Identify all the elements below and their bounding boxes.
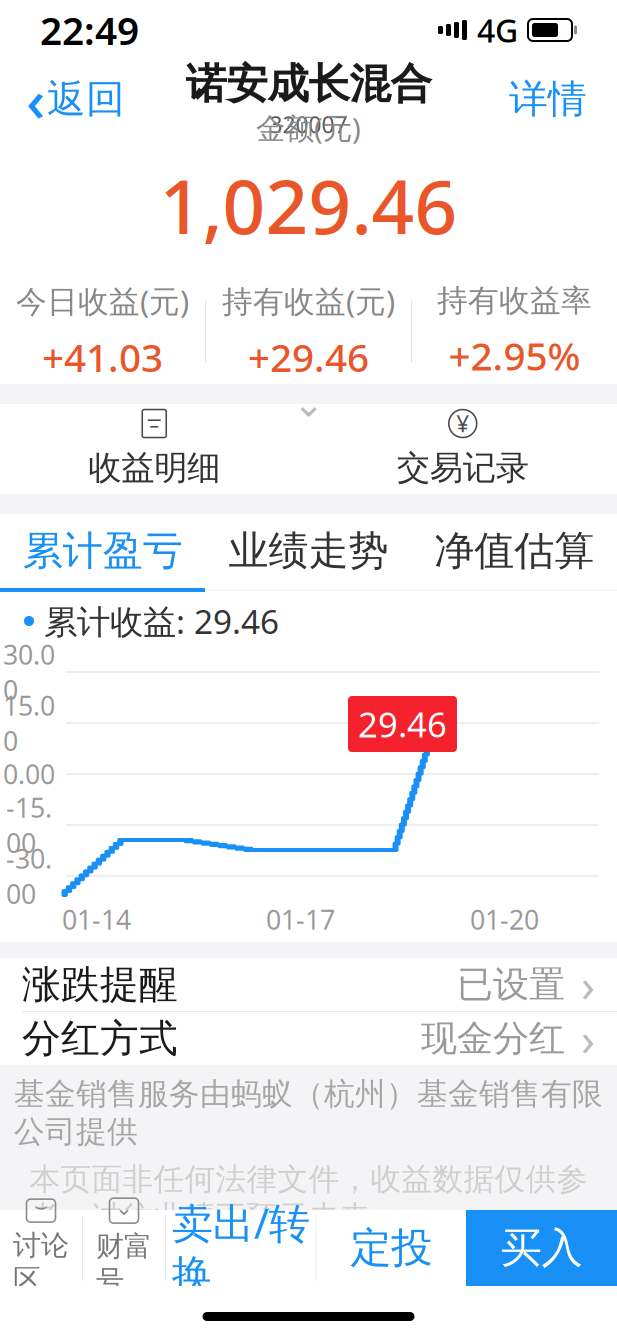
staticText: 01-17 xyxy=(266,902,335,937)
staticText: 累计收益: 29.46 xyxy=(44,599,279,643)
staticText: 交易记录 xyxy=(397,447,529,488)
staticText: 分红方式 xyxy=(22,1015,178,1062)
staticText: 买入 xyxy=(500,1223,582,1273)
button[interactable]: 卖出/转换 xyxy=(166,1210,315,1286)
staticText: 320007 xyxy=(269,109,347,139)
staticText: 0.00 xyxy=(3,756,55,792)
staticText: › xyxy=(581,954,595,1015)
button[interactable]: ‹ xyxy=(6,66,145,132)
staticText: 详情 xyxy=(509,75,587,123)
staticText: 今日收益(元) xyxy=(16,280,189,321)
button[interactable]: 涨跌提醒 xyxy=(0,958,617,1011)
button[interactable]: ⌣ xyxy=(0,1210,82,1286)
button[interactable]: 累计盈亏 xyxy=(0,514,206,588)
staticText: 返回 xyxy=(47,75,125,123)
staticText: 定投 xyxy=(350,1223,432,1273)
staticText: ⌣ xyxy=(34,1196,48,1217)
staticText: 累计盈亏 xyxy=(23,526,183,575)
staticText: 现金分红 xyxy=(421,1016,565,1061)
button[interactable]: 净值估算 xyxy=(411,514,617,588)
button[interactable]: 分红方式 xyxy=(0,1012,617,1065)
staticText: 29.46 xyxy=(358,701,447,747)
button[interactable]: ¥ xyxy=(308,404,617,494)
staticText: 15.00 xyxy=(3,688,55,758)
staticText: 已设置 xyxy=(457,962,565,1007)
staticText: › xyxy=(581,1008,595,1069)
staticText: 持有收益(元) xyxy=(222,280,395,321)
staticText: 收益明细 xyxy=(88,447,220,488)
staticText: ⌄ xyxy=(293,382,324,425)
staticText: 基金销售服务由蚂蚁（杭州）基金销售有限公司提供 xyxy=(14,1075,603,1150)
button[interactable]: 买入 xyxy=(466,1210,617,1286)
staticText: 1,029.46 xyxy=(159,155,457,255)
staticText: 30.00 xyxy=(3,637,55,707)
staticText: 涨跌提醒 xyxy=(22,961,178,1008)
staticText: ¥ xyxy=(456,408,469,439)
button[interactable]: ⌄ xyxy=(83,1210,165,1286)
staticText: 业绩走势 xyxy=(228,526,388,575)
button[interactable]: 详情 xyxy=(485,66,611,132)
staticText: 4G xyxy=(477,9,518,51)
staticText: 诺安成长混合 xyxy=(185,59,431,109)
staticText: 讨论区 xyxy=(13,1228,69,1297)
staticText: 01-20 xyxy=(470,902,539,937)
staticText: 财富号 xyxy=(96,1229,152,1298)
staticText: ⌄ xyxy=(115,1195,133,1220)
staticText: +29.46 xyxy=(248,331,369,382)
staticText: +2.95% xyxy=(448,330,580,381)
staticText: 持有收益率 xyxy=(437,282,592,320)
staticText: ‹ xyxy=(26,60,45,138)
button[interactable]: 业绩走势 xyxy=(206,514,411,588)
staticText: 卖出/转换 xyxy=(172,1195,310,1301)
staticText: 金额(元) xyxy=(256,108,361,147)
staticText: -15.00 xyxy=(6,790,52,860)
button[interactable]: 收益明细 xyxy=(0,404,308,494)
staticText: 本页面非任何法律文件，收益数据仅供参考，过往业绩不预示未来 xyxy=(29,1160,587,1236)
staticText: -30.00 xyxy=(6,841,52,911)
staticText: 净值估算 xyxy=(434,526,594,575)
staticText: +41.03 xyxy=(42,331,163,382)
button[interactable]: 展开 xyxy=(268,387,348,421)
staticText: 01-14 xyxy=(62,902,131,937)
button[interactable]: 定投 xyxy=(316,1210,466,1286)
staticText: 22:49 xyxy=(40,4,139,56)
